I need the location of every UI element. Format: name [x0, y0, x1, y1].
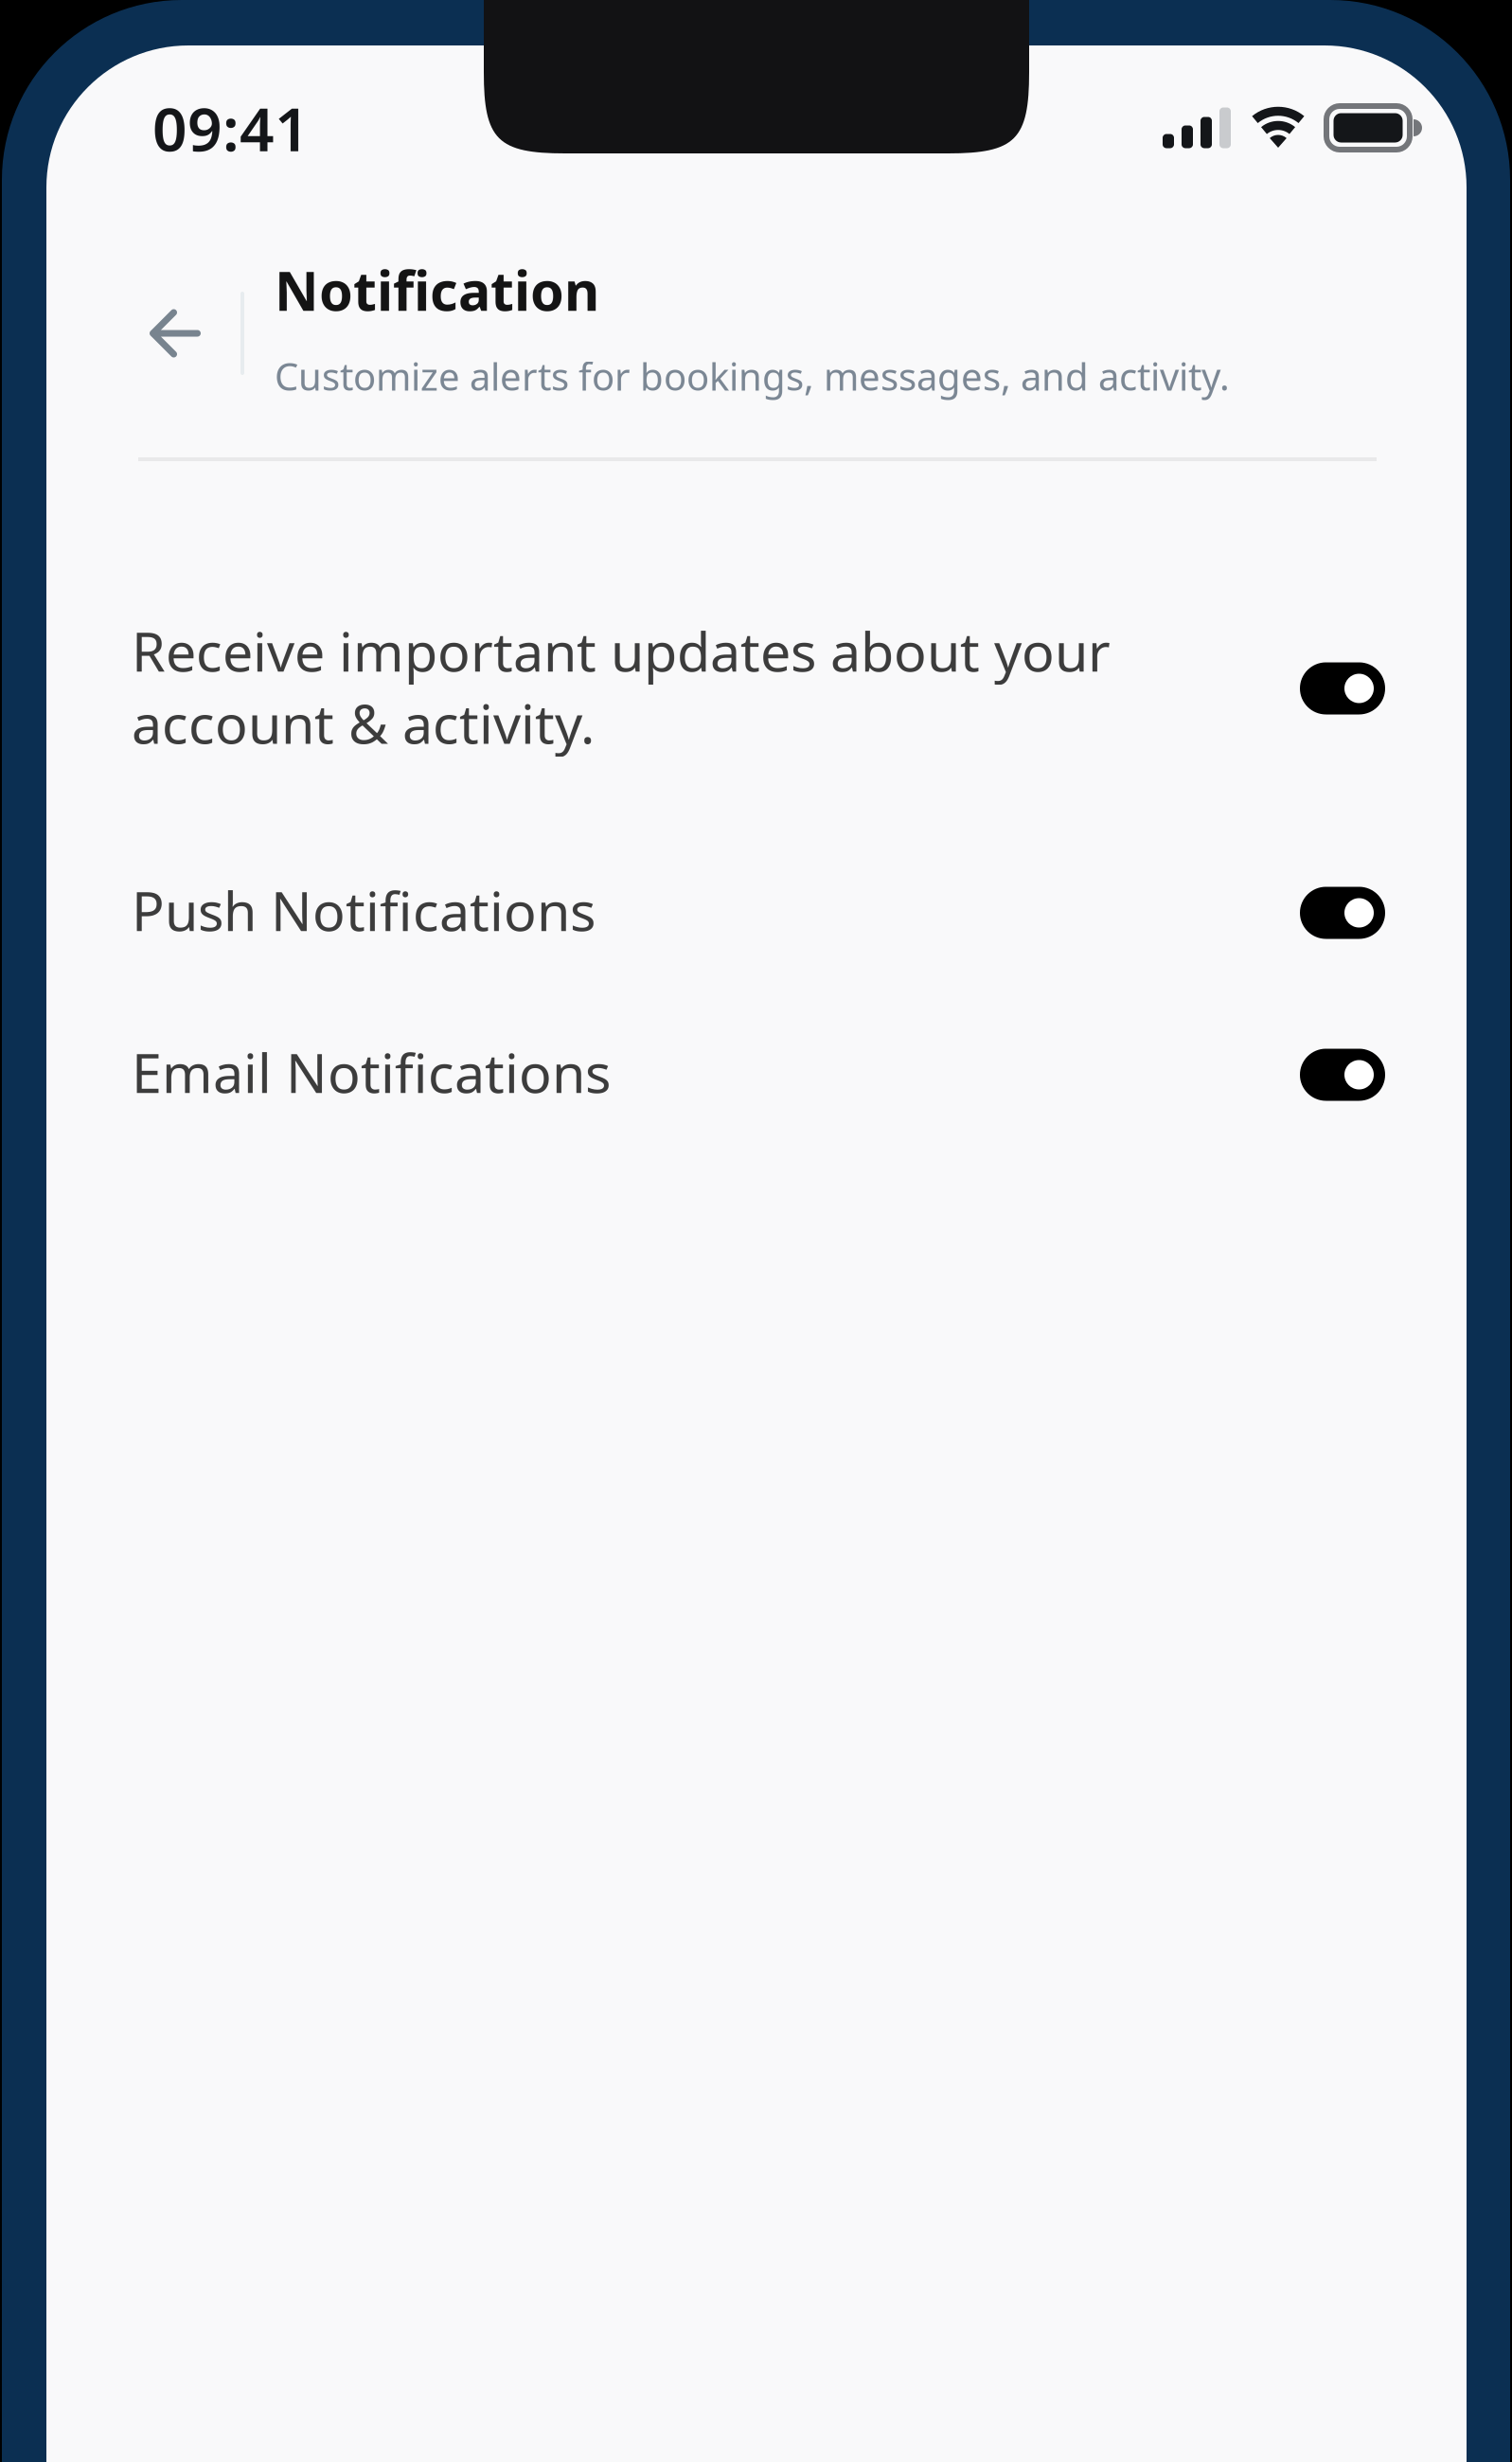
button[interactable]: Back — [123, 281, 227, 385]
staticText: Receive important updates about your acc… — [132, 615, 1111, 759]
staticText: 09:41 — [152, 88, 310, 168]
button[interactable]: Receive important updates about your acc… — [1300, 662, 1385, 714]
staticText: Customize alerts for bookings, messages,… — [275, 351, 1230, 401]
staticText: Push Notifications — [132, 874, 596, 946]
button[interactable]: Email Notifications, on — [1300, 1049, 1385, 1101]
staticText: Notification — [275, 254, 599, 326]
button[interactable]: Push Notifications, on — [1300, 887, 1385, 939]
staticText: Email Notifications — [132, 1036, 611, 1108]
